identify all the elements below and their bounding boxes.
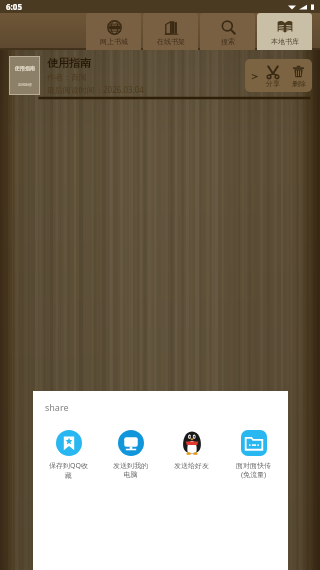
button[interactable]: Delete: [289, 63, 308, 89]
staticText: 使用指南: [15, 65, 35, 71]
staticText: 发送到我的 电脑: [113, 461, 148, 479]
staticText: 搜索: [221, 37, 235, 46]
staticText: 使用指南: [47, 56, 91, 70]
staticText: 分享: [266, 79, 280, 88]
staticText: 删除: [292, 79, 306, 88]
staticText: share: [45, 401, 69, 413]
button[interactable]: 网上书城: [86, 13, 141, 50]
button[interactable]: 在线书架: [143, 13, 198, 50]
staticText: 最后阅读时间：2026.03.04: [47, 84, 144, 95]
button[interactable]: Share: [263, 63, 282, 89]
staticText: 作者：百阅: [47, 72, 87, 82]
button[interactable]: 本地书库: [257, 13, 312, 50]
staticText: ＞: [249, 69, 260, 83]
staticText: 保存到QQ收 藏: [49, 461, 88, 480]
staticText: 发送给好友: [174, 461, 209, 470]
staticText: 百阅制作: [18, 83, 32, 87]
staticText: 网上书城: [100, 37, 128, 46]
staticText: 面对面快传 (免流量): [236, 461, 271, 479]
button[interactable]: 使用指南: [0, 50, 320, 100]
button[interactable]: 保存到QQ收 藏: [38, 427, 98, 482]
staticText: 6:05: [6, 1, 22, 12]
button[interactable]: 发送到我的 电脑: [100, 427, 160, 481]
button[interactable]: 搜索: [200, 13, 255, 50]
staticText: 在线书架: [157, 37, 185, 46]
staticText: 本地书库: [271, 37, 299, 46]
button[interactable]: 发送给好友: [161, 427, 221, 472]
button[interactable]: 面对面快传 (免流量): [223, 427, 283, 481]
